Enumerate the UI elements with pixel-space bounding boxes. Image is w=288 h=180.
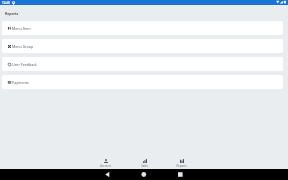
button[interactable]: Menu Item xyxy=(2,21,283,35)
staticText: Reports xyxy=(176,164,187,168)
staticText: Menu Item xyxy=(12,26,31,31)
button[interactable]: Menu Group xyxy=(2,39,283,53)
button[interactable]: Account xyxy=(87,155,123,169)
button[interactable]: User Feedback xyxy=(2,57,283,71)
button[interactable]: Back xyxy=(100,169,114,180)
button[interactable]: Reports xyxy=(163,155,199,169)
staticText: Payments xyxy=(12,80,29,85)
staticText: Reports xyxy=(5,11,19,16)
staticText: Account xyxy=(100,164,111,168)
button[interactable]: Recents xyxy=(173,169,187,180)
button[interactable]: Home xyxy=(137,169,151,180)
staticText: User Feedback xyxy=(12,62,37,67)
button[interactable]: Sales xyxy=(126,155,162,169)
button[interactable]: Payments xyxy=(2,75,283,89)
staticText: Sales xyxy=(141,164,148,168)
staticText: 12:48 xyxy=(2,1,10,5)
staticText: Menu Group xyxy=(12,44,34,49)
